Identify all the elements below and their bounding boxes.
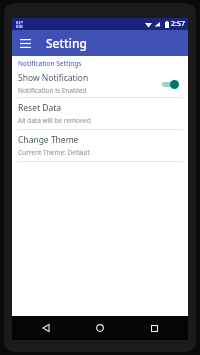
button[interactable]: Back: [34, 316, 58, 340]
button[interactable]: Recent apps: [142, 316, 166, 340]
button[interactable]: Reset Data: [12, 98, 188, 129]
staticText: Current Theme: Default: [18, 148, 90, 157]
staticText: Notification is Enabled: [18, 86, 87, 95]
staticText: 2:57: [171, 19, 185, 29]
button[interactable]: Show Notification toggle: [161, 77, 181, 91]
button[interactable]: Home: [88, 316, 112, 340]
staticText: Notification Settings: [18, 59, 82, 68]
staticText: Reset Data: [18, 102, 62, 114]
staticText: All data will be removed: [18, 116, 91, 125]
staticText: Change Theme: [18, 134, 79, 146]
button[interactable]: Change Theme: [12, 130, 188, 161]
staticText: Setting: [46, 35, 87, 51]
button[interactable]: Show Notification: [12, 70, 188, 97]
staticText: Show Notification: [18, 72, 89, 84]
button[interactable]: Open navigation menu: [12, 30, 38, 56]
